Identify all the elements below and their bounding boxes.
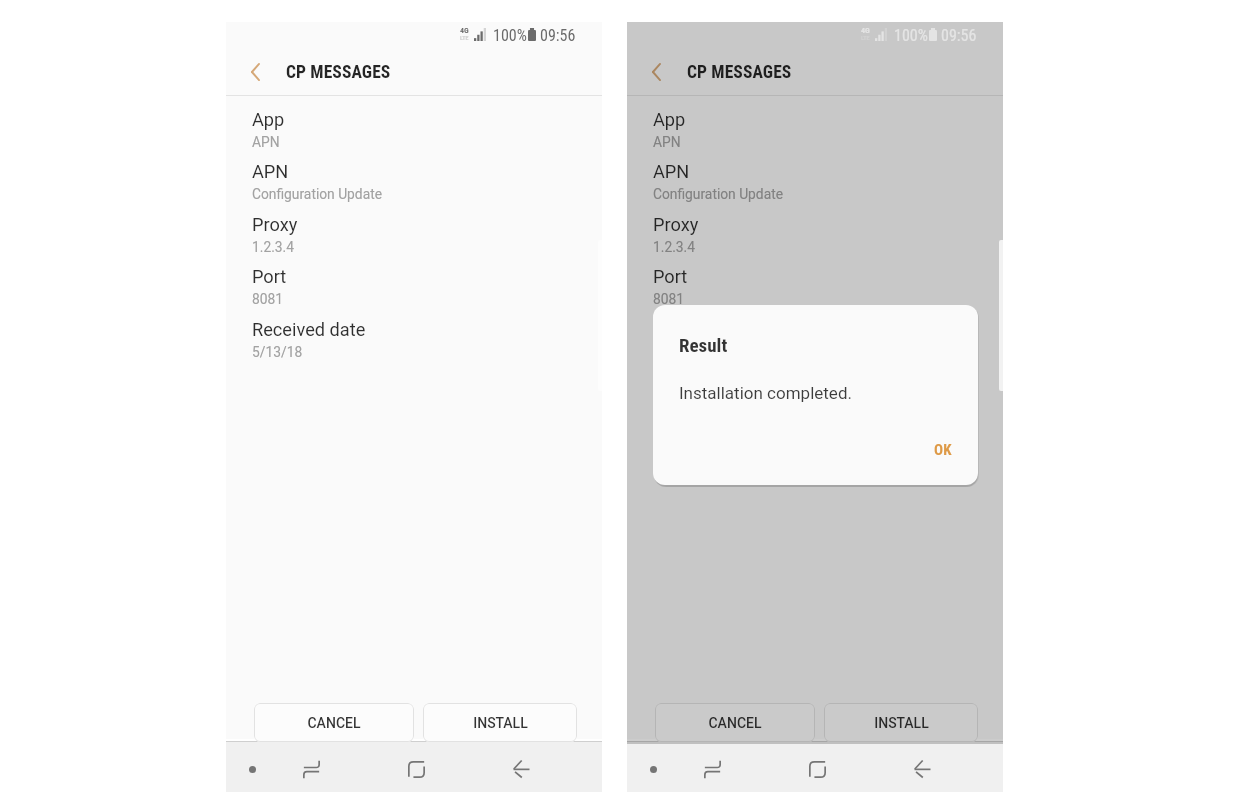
staticText: 100% <box>894 26 928 45</box>
button[interactable]: Recent apps <box>296 754 326 784</box>
staticText: 09:56 <box>941 26 977 45</box>
staticText: Configuration Update <box>653 186 783 202</box>
button[interactable]: OK <box>919 432 967 468</box>
staticText: App <box>653 109 686 130</box>
staticText: LTE <box>861 34 870 41</box>
button[interactable]: Home <box>802 754 832 784</box>
button[interactable]: Port <box>627 264 1003 316</box>
button[interactable]: CANCEL <box>254 703 414 742</box>
button[interactable]: Received date <box>627 317 1003 369</box>
button[interactable]: APN <box>627 159 1003 211</box>
button[interactable]: Received date <box>226 317 602 369</box>
staticText: Proxy <box>252 214 298 235</box>
staticText: Port <box>653 266 688 287</box>
button[interactable]: Proxy <box>226 212 602 264</box>
staticText: 100% <box>493 26 527 45</box>
staticText: INSTALL <box>874 715 929 731</box>
button[interactable]: CANCEL <box>655 703 815 742</box>
staticText: APN <box>252 134 280 150</box>
button[interactable]: Home <box>401 754 431 784</box>
staticText: CP MESSAGES <box>286 62 391 83</box>
staticText: LTE <box>460 34 469 41</box>
button[interactable]: App <box>226 107 602 159</box>
staticText: 09:56 <box>540 26 576 45</box>
staticText: 5/13/18 <box>252 344 303 360</box>
button[interactable]: Proxy <box>627 212 1003 264</box>
staticText: APN <box>653 161 690 182</box>
staticText: Configuration Update <box>252 186 382 202</box>
staticText: 5/13/18 <box>653 344 704 360</box>
button[interactable]: Notifications <box>243 760 261 778</box>
staticText: CANCEL <box>307 715 361 731</box>
staticText: 4G <box>460 26 469 35</box>
staticText: Port <box>252 266 287 287</box>
staticText: CP MESSAGES <box>687 62 792 83</box>
staticText: 1.2.3.4 <box>252 239 294 255</box>
staticText: Result <box>679 334 728 356</box>
button[interactable]: Recent apps <box>697 754 727 784</box>
button[interactable]: APN <box>226 159 602 211</box>
staticText: 8081 <box>252 291 284 307</box>
staticText: CANCEL <box>708 715 762 731</box>
staticText: Proxy <box>653 214 699 235</box>
button[interactable]: INSTALL <box>423 703 577 742</box>
staticText: Received date <box>653 319 767 340</box>
staticText: 8081 <box>653 291 685 307</box>
button[interactable]: INSTALL <box>824 703 978 742</box>
staticText: INSTALL <box>473 715 528 731</box>
staticText: 4G <box>861 26 870 35</box>
staticText: Received date <box>252 319 366 340</box>
button[interactable]: App <box>627 107 1003 159</box>
button[interactable]: Navigate up <box>637 53 675 91</box>
button[interactable]: Back <box>907 754 937 784</box>
staticText: Installation completed. <box>679 383 852 403</box>
button[interactable]: Port <box>226 264 602 316</box>
button[interactable]: Back <box>506 754 536 784</box>
staticText: 1.2.3.4 <box>653 239 695 255</box>
staticText: App <box>252 109 285 130</box>
staticText: APN <box>653 134 681 150</box>
staticText: OK <box>934 441 952 459</box>
button[interactable]: Notifications <box>644 760 662 778</box>
staticText: APN <box>252 161 289 182</box>
button[interactable]: Navigate up <box>236 53 274 91</box>
